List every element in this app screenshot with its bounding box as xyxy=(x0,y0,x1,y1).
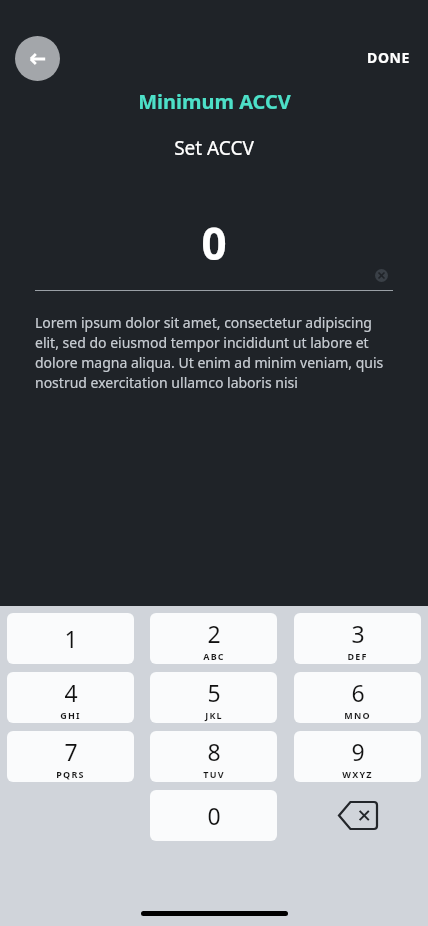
button[interactable]: Backspace xyxy=(294,790,421,841)
staticText: Lorem ipsum dolor sit amet, consectetur … xyxy=(35,313,398,392)
staticText: 5 xyxy=(207,677,221,708)
staticText: Minimum ACCV xyxy=(138,88,291,115)
button[interactable]: 6 xyxy=(294,672,421,723)
staticText: 6 xyxy=(351,677,365,708)
button[interactable]: 2 xyxy=(150,613,277,664)
button[interactable]: 8 xyxy=(150,731,277,782)
staticText: ABC xyxy=(203,650,225,662)
staticText: 1 xyxy=(64,623,78,654)
button[interactable]: 5 xyxy=(150,672,277,723)
staticText: 0 xyxy=(207,800,221,831)
staticText: 8 xyxy=(207,736,221,767)
button[interactable]: 7 xyxy=(7,731,134,782)
button[interactable]: 3 xyxy=(294,613,421,664)
staticText: GHI xyxy=(60,709,81,721)
button[interactable]: Clear xyxy=(369,263,393,287)
staticText: 3 xyxy=(351,618,365,649)
staticText: DEF xyxy=(347,650,368,662)
staticText: MNO xyxy=(344,709,371,721)
staticText: PQRS xyxy=(56,768,85,780)
button[interactable]: 1 xyxy=(7,613,134,664)
staticText: JKL xyxy=(205,709,223,721)
staticText: 7 xyxy=(64,736,78,767)
button[interactable]: 4 xyxy=(7,672,134,723)
button[interactable]: 9 xyxy=(294,731,421,782)
staticText: TUV xyxy=(203,768,225,780)
button[interactable]: 0 xyxy=(150,790,277,841)
button[interactable]: Back xyxy=(15,36,60,81)
staticText: 0 xyxy=(201,213,227,273)
staticText: WXYZ xyxy=(342,768,373,780)
staticText: 4 xyxy=(64,677,78,708)
staticText: DONE xyxy=(367,48,410,67)
staticText: 9 xyxy=(351,736,365,767)
staticText: 2 xyxy=(207,618,221,649)
staticText: Set ACCV xyxy=(174,135,254,161)
button[interactable]: DONE xyxy=(359,44,418,71)
